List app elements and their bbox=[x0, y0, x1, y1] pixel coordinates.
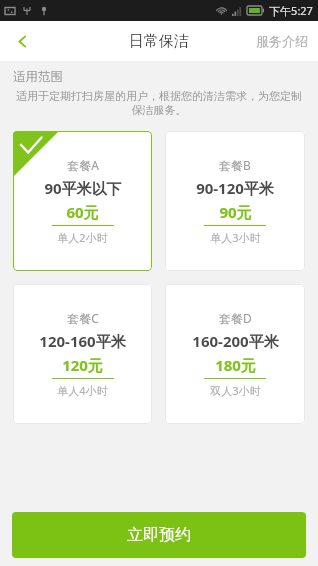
staticText: 160-200平米 bbox=[192, 331, 279, 351]
button[interactable]: 服务介绍 bbox=[246, 21, 318, 61]
staticText: 90平米以下 bbox=[44, 178, 122, 198]
staticText: 180元 bbox=[215, 355, 256, 375]
staticText: 60元 bbox=[66, 202, 99, 222]
button[interactable]: 立即预约 bbox=[12, 512, 306, 558]
button[interactable]: 套餐D bbox=[165, 284, 305, 424]
staticText: 日常保洁 bbox=[129, 32, 189, 51]
staticText: 套餐D bbox=[219, 310, 252, 326]
staticText: 套餐B bbox=[219, 157, 251, 173]
staticText: 立即预约 bbox=[127, 525, 191, 545]
staticText: 单人2小时 bbox=[57, 230, 108, 245]
staticText: 单人4小时 bbox=[57, 383, 108, 398]
staticText: 双人3小时 bbox=[210, 383, 261, 398]
button[interactable]: 套餐A bbox=[13, 131, 152, 271]
staticText: 适用于定期打扫房屋的用户，根据您的清洁需求，为您定制保洁服务。 bbox=[13, 89, 305, 117]
staticText: 服务介绍 bbox=[256, 33, 308, 49]
button[interactable]: Back bbox=[0, 21, 44, 61]
staticText: 90元 bbox=[219, 202, 252, 222]
staticText: 90-120平米 bbox=[196, 178, 274, 198]
button[interactable]: 套餐B bbox=[165, 131, 305, 271]
staticText: 适用范围 bbox=[13, 69, 63, 85]
staticText: 120元 bbox=[62, 355, 103, 375]
staticText: 120-160平米 bbox=[39, 331, 126, 351]
button[interactable]: 套餐C bbox=[13, 284, 152, 424]
staticText: 单人3小时 bbox=[210, 230, 261, 245]
staticText: 下午5:27 bbox=[269, 3, 313, 18]
staticText: 套餐C bbox=[67, 310, 99, 326]
staticText: 套餐A bbox=[67, 157, 99, 173]
